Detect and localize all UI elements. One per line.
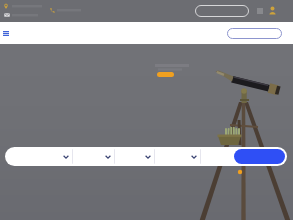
- button[interactable]: Learn more: [157, 72, 174, 77]
- button[interactable]: [5, 147, 73, 166]
- button[interactable]: Menu: [3, 31, 9, 36]
- button[interactable]: Request a quote: [195, 5, 249, 17]
- button[interactable]: [115, 147, 155, 166]
- button[interactable]: Account: [268, 6, 277, 15]
- button[interactable]: Address: [2, 2, 47, 11]
- button[interactable]: Search: [234, 149, 285, 164]
- button[interactable]: [73, 147, 115, 166]
- button[interactable]: Email: [2, 11, 47, 20]
- button[interactable]: Cart: [256, 7, 264, 15]
- button[interactable]: Call: [49, 6, 83, 16]
- button[interactable]: [155, 147, 201, 166]
- button[interactable]: Get a free quote: [227, 28, 282, 39]
